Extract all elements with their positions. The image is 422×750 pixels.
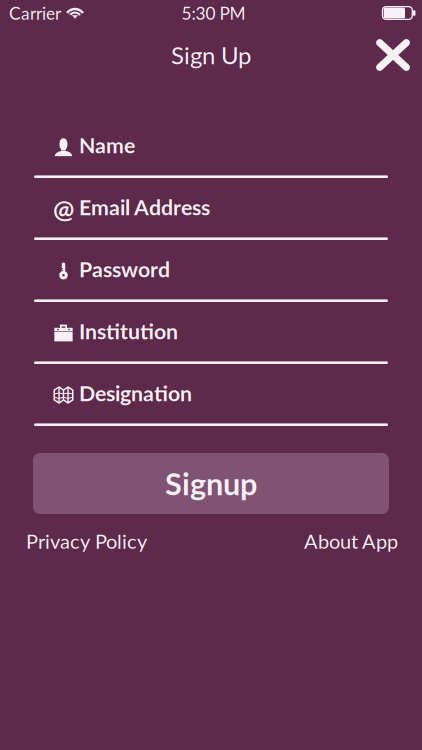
- staticText: About App: [304, 529, 398, 553]
- staticText: Email Address: [79, 194, 210, 220]
- button[interactable]: Privacy Policy: [26, 529, 147, 553]
- staticText: Password: [79, 256, 170, 282]
- button[interactable]: Signup: [33, 453, 389, 514]
- staticText: Signup: [165, 465, 257, 502]
- staticText: Designation: [79, 380, 192, 406]
- staticText: @: [53, 193, 74, 224]
- staticText: Sign Up: [171, 41, 251, 69]
- staticText: Name: [79, 132, 135, 158]
- button[interactable]: Close: [362, 29, 422, 81]
- staticText: 5:30 PM: [181, 3, 245, 23]
- staticText: Carrier: [9, 3, 61, 23]
- staticText: Privacy Policy: [26, 529, 147, 553]
- staticText: Institution: [79, 318, 178, 344]
- button[interactable]: About App: [304, 529, 398, 553]
